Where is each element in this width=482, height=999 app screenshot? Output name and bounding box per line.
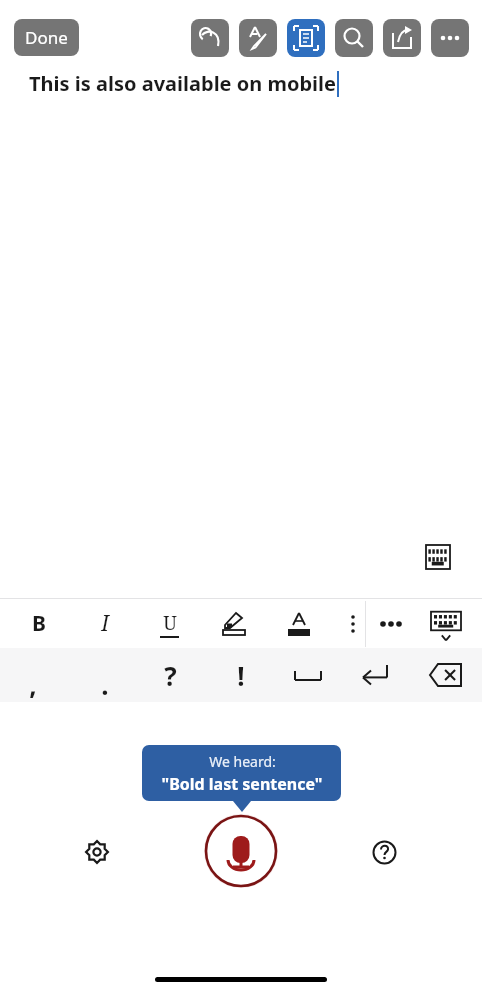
staticText: .	[101, 667, 109, 702]
button[interactable]: More	[368, 599, 414, 648]
button[interactable]: Show keyboard	[411, 530, 464, 583]
button[interactable]: Backspace	[420, 648, 472, 702]
button[interactable]: Done	[14, 19, 79, 56]
button[interactable]: Comma	[7, 648, 59, 702]
button[interactable]: Select	[287, 19, 325, 57]
staticText: "Bold last sentence"	[161, 773, 323, 795]
button[interactable]: Undo	[191, 19, 229, 57]
button[interactable]: Period	[79, 648, 131, 702]
staticText: ?	[164, 658, 177, 693]
button[interactable]: Share	[383, 19, 421, 57]
staticText: !	[237, 658, 245, 693]
button[interactable]: Hide keyboard	[423, 599, 469, 648]
button[interactable]: Font color	[276, 599, 322, 648]
button[interactable]: Microphone	[204, 814, 278, 888]
staticText: This is also available on mobile	[29, 70, 336, 97]
button[interactable]: Settings	[75, 830, 119, 874]
button[interactable]: Italic	[82, 599, 128, 648]
button[interactable]: Help	[362, 830, 406, 874]
button[interactable]: Space	[282, 648, 334, 702]
button[interactable]: Enter	[349, 648, 401, 702]
button[interactable]: Ink	[239, 19, 277, 57]
staticText: B	[32, 609, 46, 638]
button[interactable]: Bold	[16, 599, 62, 648]
button[interactable]: Exclamation mark	[215, 648, 267, 702]
staticText: We heard:	[209, 752, 276, 771]
button[interactable]: Highlight	[211, 599, 257, 648]
button[interactable]: More	[431, 19, 469, 57]
staticText: I	[101, 609, 109, 638]
staticText: Done	[25, 26, 68, 49]
button[interactable]: Search	[335, 19, 373, 57]
button[interactable]: Question mark	[144, 648, 196, 702]
staticText: U	[163, 610, 177, 636]
button[interactable]: Underline	[146, 599, 192, 648]
staticText: ,	[29, 667, 37, 702]
button[interactable]: More formatting	[330, 599, 376, 648]
